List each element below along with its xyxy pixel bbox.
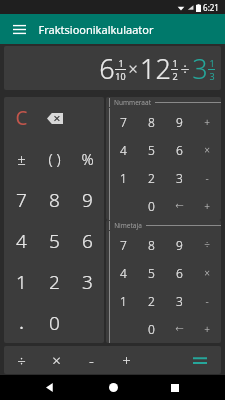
button[interactable] — [182, 346, 217, 374]
staticText: 3 — [209, 70, 215, 82]
staticText: 8 — [148, 237, 155, 253]
button[interactable]: 6 — [165, 259, 193, 287]
button[interactable]: % — [71, 138, 104, 179]
button[interactable]: - — [193, 287, 221, 315]
button[interactable]: 4 — [110, 136, 137, 164]
staticText: 4 — [16, 228, 27, 254]
button[interactable]: 0 — [137, 192, 165, 220]
button[interactable]: 1 — [110, 287, 137, 315]
button[interactable]: 2 — [38, 261, 71, 302]
staticText: ÷ — [204, 238, 210, 252]
staticText: 12 — [140, 50, 171, 87]
staticText: × — [204, 143, 210, 157]
staticText: 6 — [99, 50, 115, 87]
button[interactable]: × — [39, 346, 74, 374]
staticText: . — [19, 311, 24, 334]
button[interactable]: 8 — [38, 179, 71, 220]
staticText: 2 — [148, 293, 155, 309]
button[interactable]: 1 — [4, 261, 38, 302]
staticText: 7 — [120, 114, 127, 130]
button[interactable]: + — [193, 192, 221, 220]
staticText: 3 — [82, 269, 93, 295]
button[interactable]: 9 — [165, 108, 193, 136]
button[interactable]: 3 — [71, 261, 104, 302]
button[interactable]: ← — [165, 315, 193, 343]
button[interactable]: ÷ — [193, 231, 221, 259]
button[interactable]: 9 — [165, 231, 193, 259]
staticText: 4 — [120, 265, 127, 281]
button[interactable]: ÷ — [4, 346, 39, 374]
button[interactable]: 2 — [137, 164, 165, 192]
staticText: 6:21 — [203, 2, 219, 13]
button[interactable]: 5 — [137, 136, 165, 164]
staticText: ( ) — [48, 149, 61, 169]
button[interactable]: 7 — [110, 108, 137, 136]
staticText: 3 — [176, 170, 183, 186]
button[interactable]: 0 — [137, 315, 165, 343]
button[interactable]: + — [193, 315, 221, 343]
staticText: + — [122, 350, 131, 370]
button[interactable]: . — [4, 302, 38, 343]
staticText: 10 — [115, 70, 126, 82]
staticText: 2 — [172, 70, 178, 82]
button[interactable]: C — [4, 97, 38, 138]
button[interactable]: Back — [37, 375, 63, 400]
button[interactable]: 8 — [137, 108, 165, 136]
button[interactable]: 6 — [71, 220, 104, 261]
staticText: C — [15, 105, 28, 131]
button[interactable]: 7 — [4, 179, 38, 220]
button[interactable]: 5 — [137, 259, 165, 287]
button[interactable]: - — [193, 164, 221, 192]
staticText: + — [204, 199, 210, 213]
button[interactable]: × — [193, 259, 221, 287]
button[interactable]: 6 — [4, 46, 221, 90]
staticText: 3 — [192, 50, 208, 87]
button[interactable]: ← — [165, 192, 193, 220]
staticText: 9 — [82, 187, 93, 213]
staticText: ← — [175, 200, 184, 212]
staticText: 0 — [148, 321, 155, 337]
button[interactable]: 7 — [110, 231, 137, 259]
button[interactable]: 8 — [137, 231, 165, 259]
button[interactable]: Open navigation menu — [8, 18, 30, 40]
button[interactable]: ( ) — [38, 138, 71, 179]
button[interactable]: + — [109, 346, 144, 374]
button[interactable]: - — [74, 346, 109, 374]
button[interactable]: ± — [4, 138, 38, 179]
staticText: 6 — [82, 228, 93, 254]
staticText: - — [205, 294, 209, 308]
staticText: Nummeraat — [114, 98, 151, 107]
staticText: + — [204, 115, 210, 129]
button[interactable]: 4 — [4, 220, 38, 261]
staticText: ± — [17, 149, 26, 169]
staticText: ÷ — [180, 58, 190, 80]
staticText: 1 — [120, 170, 127, 186]
staticText: × — [52, 350, 61, 370]
staticText: 9 — [176, 114, 183, 130]
button[interactable]: 4 — [110, 259, 137, 287]
button[interactable]: 3 — [165, 287, 193, 315]
button[interactable]: Backspace — [38, 97, 71, 138]
other: Backspace — [45, 108, 65, 128]
button[interactable]: 0 — [38, 302, 71, 343]
button[interactable]: 3 — [165, 164, 193, 192]
staticText: 7 — [16, 187, 27, 213]
staticText: 6 — [176, 142, 183, 158]
staticText: 1 — [16, 269, 27, 295]
staticText: 5 — [148, 265, 155, 281]
button[interactable]: 5 — [38, 220, 71, 261]
button[interactable]: × — [193, 136, 221, 164]
staticText: 8 — [148, 114, 155, 130]
button[interactable]: 2 — [137, 287, 165, 315]
button[interactable]: 9 — [71, 179, 104, 220]
button[interactable]: 6 — [165, 136, 193, 164]
button[interactable]: + — [193, 108, 221, 136]
button[interactable]: 1 — [110, 164, 137, 192]
button[interactable]: Home — [100, 375, 126, 400]
staticText: 9 — [176, 237, 183, 253]
button[interactable]: Recent apps — [162, 375, 188, 400]
